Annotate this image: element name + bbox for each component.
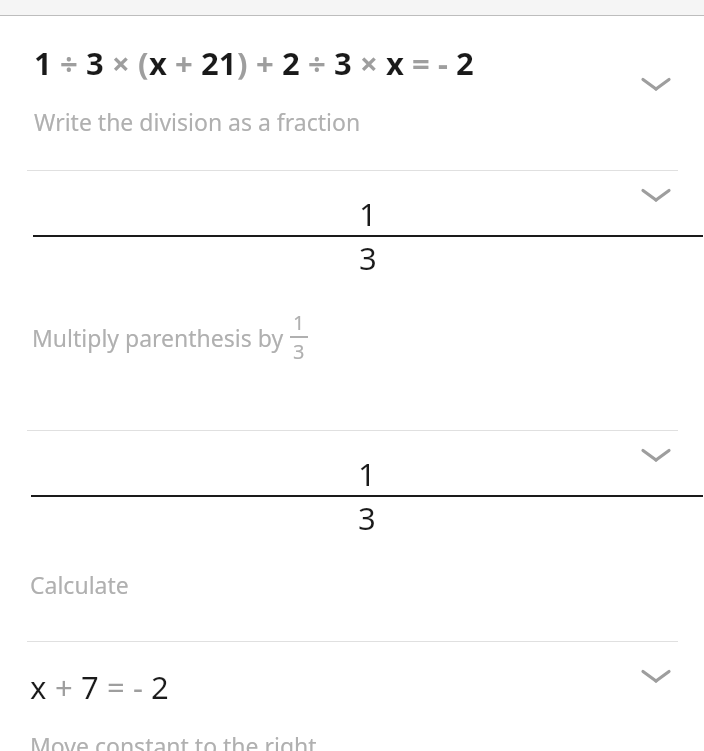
staticText: Write the division as a fraction [34, 106, 361, 137]
staticText: 2 [448, 42, 474, 84]
staticText: 3 [358, 497, 376, 539]
button[interactable]: Expand step [632, 652, 680, 700]
staticText: Multiply parenthesis by [32, 322, 284, 353]
staticText: + [248, 42, 282, 84]
staticText: Calculate [30, 569, 129, 600]
staticText: 2 [143, 666, 169, 708]
staticText: Move constant to the right [30, 730, 317, 751]
staticText: × [104, 42, 138, 84]
staticText: 21 [201, 42, 237, 84]
staticText: 3 [359, 237, 377, 279]
staticText: - [133, 666, 143, 708]
button[interactable]: Expand step [632, 431, 680, 479]
staticText: + [47, 666, 81, 708]
button[interactable]: x [0, 642, 704, 751]
staticText: - [438, 42, 448, 84]
button[interactable]: 1 [0, 171, 704, 430]
staticText: x [386, 42, 404, 84]
staticText: ÷ [300, 42, 334, 84]
staticText: 7 [81, 666, 99, 708]
staticText: 1 [34, 42, 52, 84]
staticText: 1 [359, 193, 377, 235]
staticText: 3 [334, 42, 352, 84]
staticText: × [352, 42, 386, 84]
button[interactable]: Expand step [632, 60, 680, 108]
staticText: = [404, 42, 438, 84]
staticText: 1 [293, 309, 305, 336]
button[interactable]: Expand step [632, 171, 680, 219]
staticText: 2 [282, 42, 300, 84]
staticText: + [167, 42, 201, 84]
staticText: ÷ [52, 42, 86, 84]
staticText: ) [237, 42, 248, 84]
staticText: = [99, 666, 133, 708]
staticText: x [30, 666, 47, 708]
staticText: ( [138, 42, 149, 84]
staticText: x [149, 42, 167, 84]
staticText: 1 [358, 453, 376, 495]
button[interactable]: 1 [0, 431, 704, 641]
button[interactable]: 1 [0, 16, 704, 170]
staticText: 3 [86, 42, 104, 84]
staticText: 3 [293, 338, 305, 365]
